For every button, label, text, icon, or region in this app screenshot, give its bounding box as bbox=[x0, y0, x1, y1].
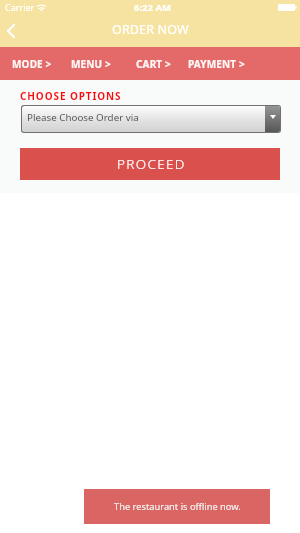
button[interactable]: PROCEED bbox=[20, 148, 280, 180]
staticText: Carrier bbox=[5, 1, 35, 13]
button[interactable]: PAYMENT > bbox=[188, 47, 245, 80]
button[interactable]: CART > bbox=[136, 47, 171, 80]
staticText: PROCEED bbox=[117, 155, 186, 173]
button[interactable]: Back bbox=[0, 18, 22, 44]
staticText: 6:22 AM bbox=[134, 1, 171, 14]
staticText: MODE > bbox=[12, 57, 52, 71]
staticText: ORDER NOW bbox=[112, 21, 189, 38]
button[interactable]: MENU > bbox=[71, 47, 111, 80]
staticText: Please Choose Order via bbox=[27, 111, 139, 124]
button[interactable]: Please Choose Order via bbox=[22, 106, 280, 132]
staticText: The restaurant is offline now. bbox=[114, 500, 241, 513]
staticText: CHOOSE OPTIONS bbox=[20, 89, 122, 103]
staticText: CART > bbox=[136, 57, 171, 71]
staticText: PAYMENT > bbox=[188, 57, 245, 71]
button[interactable]: MODE > bbox=[12, 47, 52, 80]
staticText: MENU > bbox=[71, 57, 111, 71]
